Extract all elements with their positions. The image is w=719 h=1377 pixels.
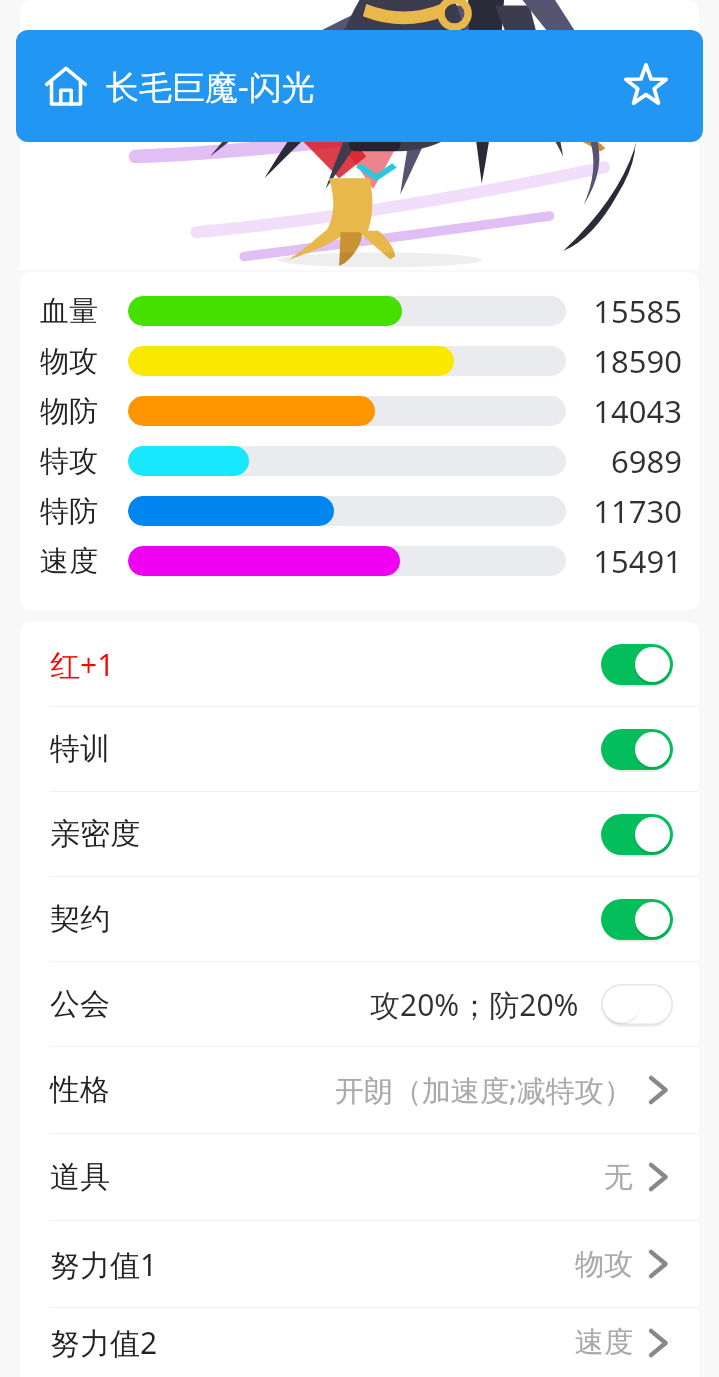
staticText: 道具 bbox=[50, 1158, 110, 1196]
staticText: 开朗（加速度;减特攻） bbox=[335, 1070, 633, 1110]
button[interactable]: Toggle on bbox=[601, 644, 673, 685]
button[interactable]: Toggle on bbox=[601, 814, 673, 855]
button[interactable]: 性格 bbox=[20, 1047, 699, 1133]
button[interactable]: 红+1 bbox=[20, 622, 699, 706]
staticText: 契约 bbox=[50, 900, 110, 938]
staticText: 物防 bbox=[40, 393, 128, 430]
staticText: 14043 bbox=[593, 390, 682, 432]
staticText: 物攻 bbox=[40, 343, 128, 380]
button[interactable]: Toggle on bbox=[601, 729, 673, 770]
staticText: 特防 bbox=[40, 493, 128, 530]
button[interactable]: Home bbox=[42, 62, 90, 110]
staticText: 性格 bbox=[50, 1071, 110, 1109]
button[interactable]: 特训 bbox=[20, 707, 699, 791]
staticText: 长毛巨魔-闪光 bbox=[106, 64, 315, 109]
staticText: 物攻 bbox=[575, 1246, 633, 1283]
staticText: 特训 bbox=[50, 730, 110, 768]
staticText: 15491 bbox=[593, 540, 682, 582]
staticText: 努力值2 bbox=[50, 1322, 158, 1363]
staticText: 血量 bbox=[40, 293, 128, 330]
button[interactable]: Favorite bbox=[619, 59, 673, 113]
staticText: 无 bbox=[604, 1159, 633, 1196]
staticText: 11730 bbox=[593, 490, 682, 532]
staticText: 努力值1 bbox=[50, 1244, 158, 1285]
staticText: 速度 bbox=[40, 543, 128, 580]
staticText: 速度 bbox=[575, 1324, 633, 1361]
staticText: 攻20%；防20% bbox=[370, 984, 579, 1025]
button[interactable]: 公会 bbox=[20, 962, 699, 1046]
button[interactable]: 亲密度 bbox=[20, 792, 699, 876]
button[interactable]: 努力值2 bbox=[20, 1308, 699, 1377]
staticText: 6989 bbox=[611, 440, 682, 482]
button[interactable]: Toggle on bbox=[601, 899, 673, 940]
staticText: 红+1 bbox=[50, 644, 115, 685]
button[interactable]: 道具 bbox=[20, 1134, 699, 1220]
staticText: 公会 bbox=[50, 985, 110, 1023]
staticText: 15585 bbox=[593, 290, 682, 332]
staticText: 亲密度 bbox=[50, 815, 140, 853]
button[interactable]: Toggle off bbox=[601, 984, 673, 1025]
button[interactable]: 契约 bbox=[20, 877, 699, 961]
button[interactable]: 努力值1 bbox=[20, 1221, 699, 1307]
staticText: 18590 bbox=[593, 340, 682, 382]
staticText: 特攻 bbox=[40, 443, 128, 480]
